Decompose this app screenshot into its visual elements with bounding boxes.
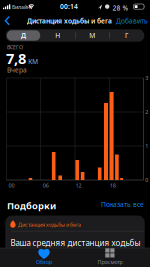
- staticText: Подборки: [7, 199, 56, 212]
- button[interactable]: Назад: [0, 0, 14, 28]
- staticText: Добавить: [116, 16, 148, 25]
- staticText: Г: [125, 31, 128, 40]
- staticText: 28 %: [112, 4, 128, 12]
- staticText: 12: [75, 182, 81, 189]
- button[interactable]: Обзор: [6, 248, 81, 267]
- staticText: Обзор: [36, 258, 52, 266]
- button[interactable]: Добавить: [116, 16, 148, 25]
- staticText: 06: [43, 182, 49, 189]
- staticText: Просмотр: [97, 258, 122, 266]
- button[interactable]: Г: [109, 29, 144, 42]
- staticText: 18: [110, 182, 116, 189]
- staticText: 2: [145, 108, 148, 116]
- button[interactable]: Д: [6, 29, 41, 42]
- staticText: Дистанция ходьбы и бега: [18, 221, 81, 228]
- button[interactable]: Н: [41, 29, 75, 42]
- staticText: ВСЕГО: [7, 44, 23, 51]
- staticText: Дистанция ходьбы и бега: [27, 16, 112, 25]
- staticText: Д: [21, 31, 26, 40]
- button[interactable]: Показать все: [101, 200, 144, 209]
- staticText: 00: [8, 182, 14, 189]
- staticText: Показать все: [101, 200, 144, 209]
- button[interactable]: Дистанция ходьбы и бега: [5, 215, 145, 259]
- staticText: М: [89, 31, 95, 40]
- staticText: км: [28, 56, 38, 66]
- staticText: 3: [145, 74, 148, 82]
- button[interactable]: М: [75, 29, 109, 42]
- staticText: Вчера: [7, 65, 27, 74]
- staticText: Билайн: [12, 3, 30, 10]
- staticText: Н: [55, 31, 60, 40]
- staticText: 0: [145, 176, 148, 184]
- button[interactable]: Просмотр: [72, 248, 147, 267]
- staticText: 00:14: [60, 2, 78, 11]
- staticText: Ваша средняя дистанция ходьбы: [10, 237, 140, 248]
- staticText: 1: [145, 142, 148, 150]
- staticText: 7,8: [6, 49, 26, 68]
